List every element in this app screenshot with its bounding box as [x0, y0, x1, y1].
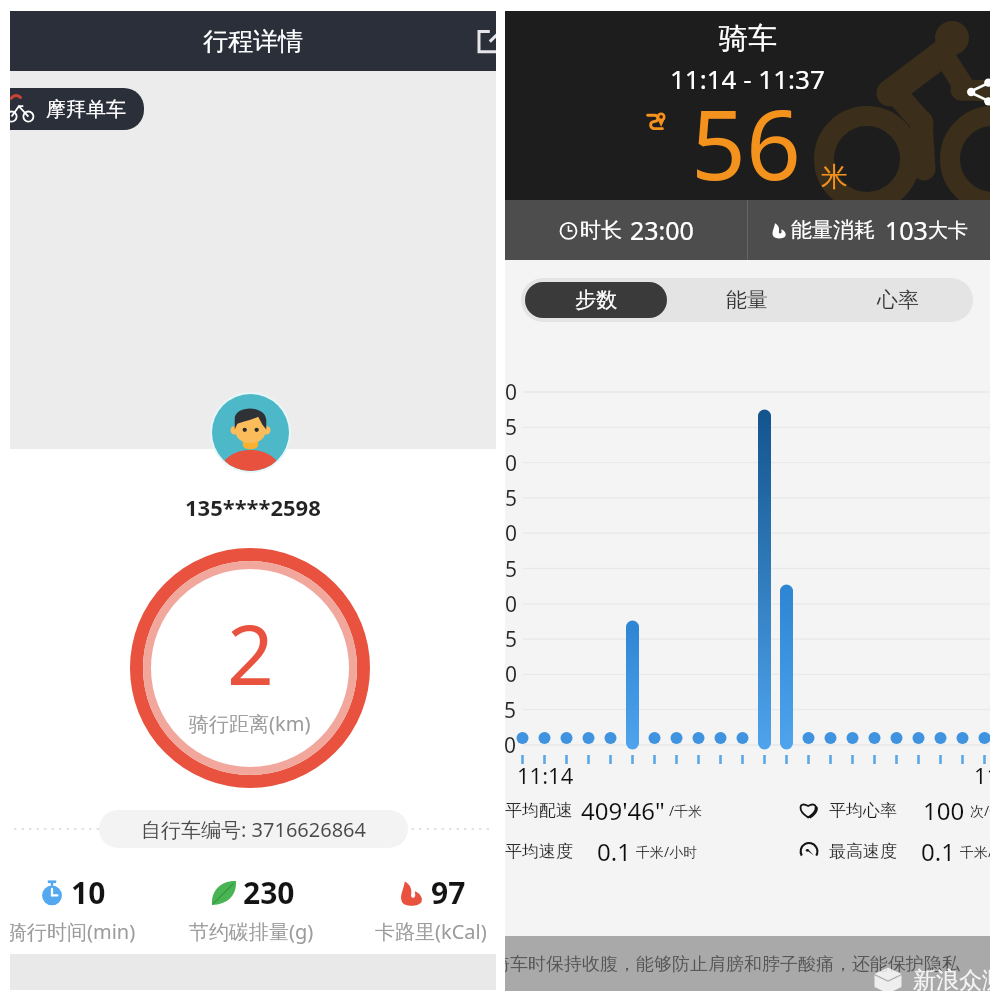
button[interactable]: Share [469, 19, 496, 63]
staticText: 0 [505, 731, 517, 760]
staticText: 56 [691, 77, 801, 200]
button[interactable]: 平均速度 [505, 835, 698, 867]
button[interactable]: 心率 [826, 282, 969, 318]
staticText: 骑行时间(min) [10, 918, 136, 945]
staticText: 节约碳排量(g) [189, 918, 314, 945]
staticText: 能量 [726, 287, 768, 313]
staticText: 11:37 [974, 760, 990, 790]
staticText: 409'46" [581, 794, 665, 826]
staticText: 平均心率 [829, 800, 897, 821]
staticText: 新浪众测 [913, 966, 990, 991]
staticText: 30 [505, 519, 518, 548]
staticText: 自行车编号: 3716626864 [141, 816, 366, 843]
staticText: 时长 [580, 217, 622, 243]
staticText: 能量消耗 [791, 217, 875, 243]
staticText: 心率 [877, 287, 919, 313]
staticText: 40 [505, 449, 518, 478]
staticText: 35 [505, 484, 518, 513]
staticText: 135****2598 [185, 492, 321, 522]
staticText: 230 [243, 872, 295, 913]
staticText: 千米/小时 [960, 842, 990, 861]
staticText: 50 [505, 378, 518, 407]
button[interactable]: 平均配速 [505, 794, 703, 826]
staticText: 11:14 - 11:37 [670, 61, 825, 96]
staticText: 骑车 [719, 20, 777, 57]
staticText: 千米/小时 [636, 842, 698, 861]
button[interactable]: 最高速度 [798, 835, 990, 867]
staticText: 23:00 [630, 213, 694, 247]
button[interactable]: 步数 [525, 282, 667, 318]
staticText: 骑行距离(km) [189, 710, 311, 737]
staticText: 20 [505, 590, 518, 619]
staticText: 米 [821, 160, 848, 194]
staticText: 11:14 [517, 760, 574, 790]
button[interactable]: 平均心率 [798, 794, 990, 826]
button[interactable]: 10 [10, 872, 136, 945]
button[interactable]: Share [961, 73, 990, 111]
staticText: 2 [227, 597, 274, 709]
staticText: /千米 [669, 801, 703, 820]
staticText: 5 [505, 696, 517, 725]
button[interactable]: 97 [375, 872, 487, 945]
staticText: 骑车时保持收腹，能够防止肩膀和脖子酸痛，还能保护隐私部位 [505, 953, 977, 976]
button[interactable]: 自行车编号: 3716626864 [99, 810, 408, 848]
staticText: 15 [505, 625, 518, 654]
staticText: 0.1 [597, 835, 631, 867]
staticText: 步数 [575, 287, 617, 313]
staticText: 45 [505, 413, 518, 442]
staticText: 平均配速 [505, 800, 573, 821]
button[interactable]: 230 [189, 872, 314, 945]
button[interactable]: 能量 [675, 282, 818, 318]
button[interactable]: 摩拜单车 [10, 88, 144, 130]
staticText: 平均速度 [505, 841, 573, 862]
staticText: 97 [431, 872, 466, 913]
staticText: 大卡 [928, 218, 968, 243]
staticText: 103 [885, 213, 928, 247]
staticText: 卡路里(kCal) [375, 918, 487, 945]
staticText: 0.1 [921, 835, 955, 867]
staticText: 10 [71, 872, 106, 913]
staticText: 最高速度 [829, 841, 897, 862]
staticText: 25 [505, 555, 518, 584]
staticText: 次/分 [970, 801, 990, 820]
staticText: 摩拜单车 [46, 97, 126, 122]
staticText: 行程详情 [203, 26, 303, 57]
staticText: 10 [505, 660, 518, 689]
staticText: 100 [923, 794, 965, 826]
